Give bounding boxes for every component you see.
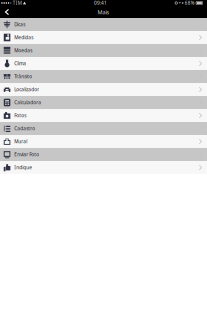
button[interactable]: Indique (0, 161, 207, 174)
button[interactable]: Medidas (0, 31, 207, 44)
button[interactable]: Back (0, 7, 12, 17)
button[interactable]: Localizador (0, 83, 207, 96)
button[interactable]: Enviar Foto (0, 148, 207, 161)
staticText: Moedas (14, 47, 32, 54)
staticText: 68% (185, 0, 195, 6)
staticText: Trânsito (14, 73, 32, 80)
staticText: Mais (97, 8, 109, 16)
button[interactable]: Clima (0, 57, 207, 70)
button[interactable]: Moedas (0, 44, 207, 57)
staticText: Enviar Foto (14, 151, 39, 158)
staticText: Indique (14, 164, 32, 171)
button[interactable]: Fotos (0, 109, 207, 122)
button[interactable]: Dicas (0, 18, 207, 31)
staticText: Fotos (14, 112, 26, 119)
staticText: Dicas (14, 21, 25, 28)
button[interactable]: Calculadora (0, 96, 207, 109)
staticText: TIM (13, 0, 22, 6)
staticText: 09:41 (94, 0, 107, 6)
button[interactable]: Cadastro (0, 122, 207, 135)
staticText: Clima (14, 60, 26, 67)
staticText: Medidas (14, 34, 33, 41)
button[interactable]: Trânsito (0, 70, 207, 83)
staticText: Mural (14, 138, 27, 145)
staticText: Cadastro (14, 125, 35, 132)
button[interactable]: Mural (0, 135, 207, 148)
staticText: Localizador (14, 86, 39, 93)
staticText: Calculadora (14, 99, 41, 106)
